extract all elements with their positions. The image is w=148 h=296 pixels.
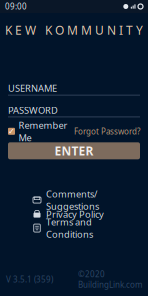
button[interactable]: ✓: [8, 123, 67, 139]
staticText: USERNAME: [8, 82, 57, 94]
button[interactable]: Comments/Suggestions: [32, 194, 116, 206]
staticText: Forgot Password?: [74, 126, 140, 137]
button[interactable]: ENTER: [8, 142, 140, 159]
staticText: PASSWORD: [8, 104, 58, 116]
staticText: ✓: [8, 127, 15, 136]
staticText: ENTER: [54, 143, 93, 159]
staticText: 09:00: [5, 1, 27, 12]
staticText: K E W K O M M U N I T Y: [5, 22, 143, 38]
staticText: Remember Me: [18, 119, 67, 144]
button[interactable]: Terms and Conditions: [32, 222, 116, 234]
button[interactable]: Forgot Password?: [74, 123, 140, 139]
staticText: Terms and Conditions: [46, 216, 93, 240]
staticText: V 3.5.1 (359): [6, 274, 53, 285]
staticText: Comments/Suggestions: [46, 188, 99, 212]
button[interactable]: Privacy Policy: [32, 208, 116, 220]
staticText: Privacy Policy: [46, 208, 104, 220]
staticText: ©2020 BuildingLink.com: [78, 269, 142, 290]
